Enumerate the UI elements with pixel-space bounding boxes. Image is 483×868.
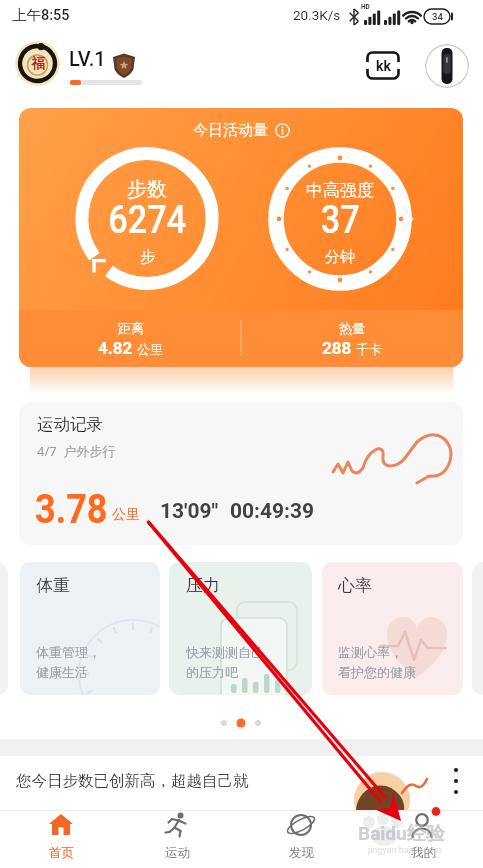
staticText: 4/7 户外步行 [37,442,116,460]
staticText: 快来测测自己 [186,644,264,660]
staticText: 发现 [289,845,314,861]
staticText: 健康生活 [36,664,88,680]
staticText: 千卡 [356,341,382,357]
staticText: 6274 [108,197,187,243]
button[interactable]: 我的 [373,810,473,868]
button[interactable]: 您今日步数已创新高，超越自己就 [0,756,483,810]
staticText: 我的 [411,845,436,861]
staticText: 体重 [36,575,70,596]
button[interactable]: 发现 [251,810,351,868]
staticText: 公里 [137,341,163,357]
staticText: 体重管理， [36,644,101,660]
staticText: 公里 [112,506,140,524]
staticText: kk [376,58,391,74]
staticText: 4.82 [98,338,133,358]
staticText: 运动 [165,845,190,861]
button[interactable]: kk [366,51,400,80]
staticText: 距离 [118,320,144,336]
staticText: 3.78 [35,486,108,533]
button[interactable]: 首页 [11,810,111,868]
button[interactable]: 心率 [322,562,463,695]
staticText: 20.3K/s [293,7,341,23]
staticText: 福 [31,55,45,73]
staticText: 00:49:39 [230,499,315,524]
staticText: 的压力吧 [186,664,238,680]
staticText: 13'09" [160,499,219,524]
staticText: 上午8:55 [12,6,70,24]
button[interactable]: 压力 [169,562,312,695]
staticText: 中高强度 [306,180,374,201]
button[interactable]: 今日活动量 [19,108,463,367]
staticText: 步 [140,248,155,267]
staticText: 分钟 [325,248,355,267]
staticText: 监测心率， [338,644,403,660]
button[interactable]: 运动 [127,810,227,868]
button[interactable]: 体重 [20,562,160,695]
staticText: 压力 [186,575,220,596]
button[interactable]: 运动记录 [19,402,463,545]
staticText: 37 [321,197,360,243]
staticText: 288 [322,338,352,358]
button[interactable]: 福 [15,41,60,86]
staticText: LV.1 [69,47,106,70]
staticText: 步数 [127,177,167,201]
staticText: Baidu经验 [358,822,445,846]
staticText: 首页 [49,845,74,861]
staticText: jingyan.baidu.com [368,845,442,856]
staticText: 看护您的健康 [338,664,416,680]
staticText: 34 [432,11,443,22]
staticText: 心率 [338,575,372,596]
staticText: 热量 [339,320,365,336]
staticText: 今日活动量 [193,121,268,140]
staticText: 您今日步数已创新高，超越自己就 [16,771,249,791]
staticText: 运动记录 [37,414,103,435]
button[interactable] [425,44,469,88]
staticText: HD [361,3,370,11]
